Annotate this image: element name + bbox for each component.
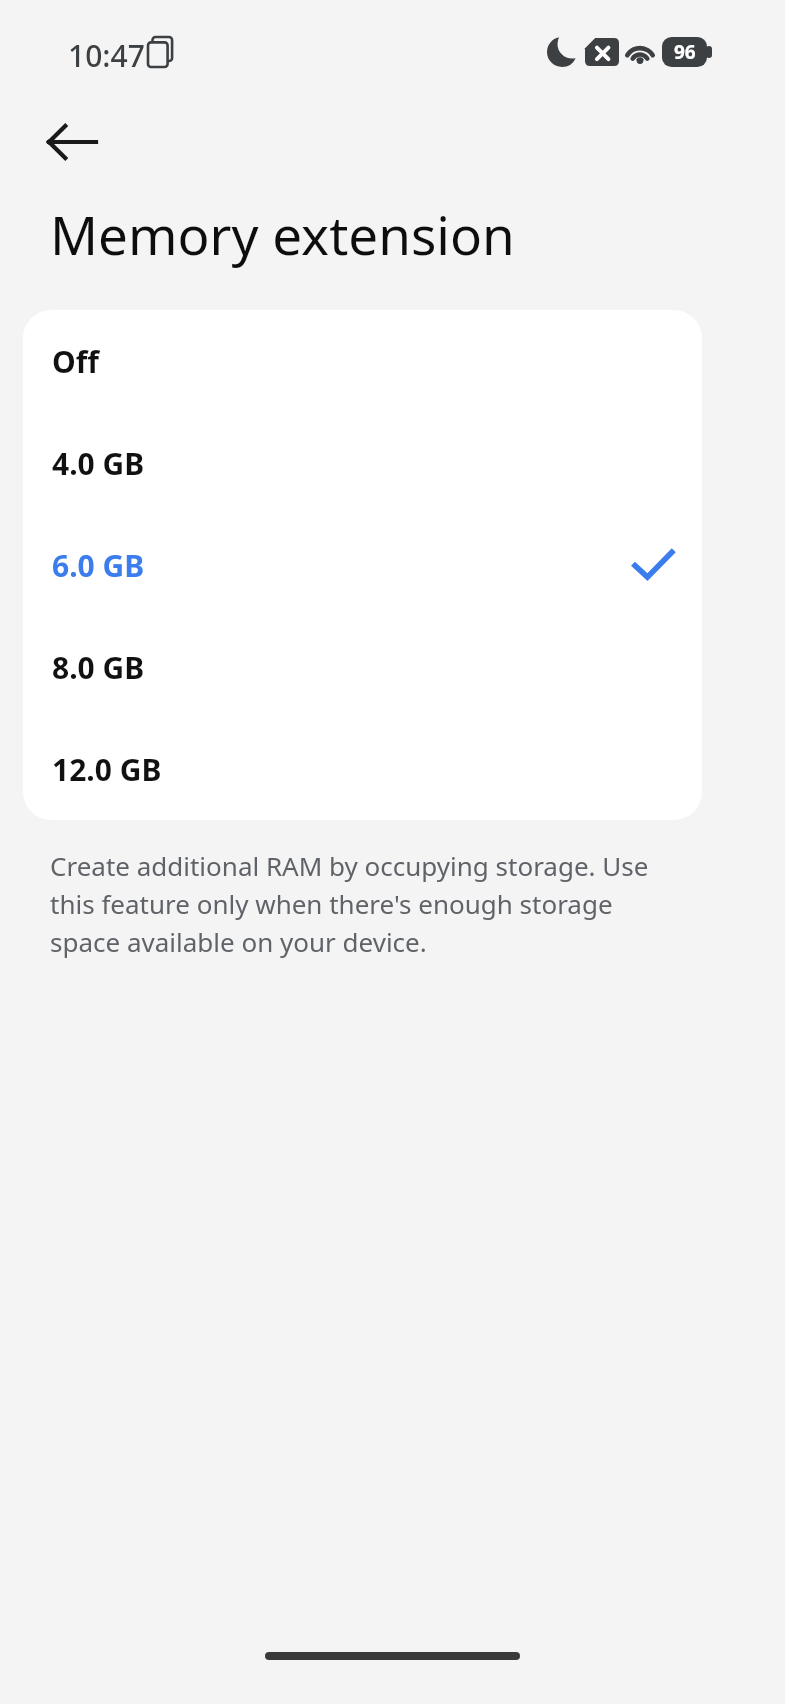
button[interactable]: 12.0 GB	[23, 718, 702, 820]
staticText: 96	[674, 39, 696, 65]
staticText: Create additional RAM by occupying stora…	[50, 848, 662, 959]
button[interactable]: Back	[30, 100, 114, 184]
button[interactable]: Off	[23, 310, 702, 412]
staticText: Memory extension	[50, 198, 515, 270]
staticText: 12.0 GB	[52, 749, 162, 790]
button[interactable]: 4.0 GB	[23, 412, 702, 514]
staticText: 10:47	[68, 35, 145, 76]
button[interactable]: 6.0 GB	[23, 514, 702, 616]
button[interactable]: 8.0 GB	[23, 616, 702, 718]
staticText: 8.0 GB	[52, 647, 145, 688]
staticText: 6.0 GB	[52, 545, 145, 586]
staticText: Off	[52, 341, 99, 382]
staticText: 4.0 GB	[52, 443, 145, 484]
